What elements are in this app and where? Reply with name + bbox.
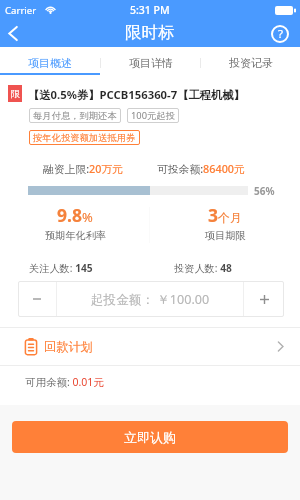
- button[interactable]: 投资记录: [201, 51, 300, 75]
- staticText: 融资上限:20万元: [43, 161, 124, 176]
- staticText: 可用余额: 0.01元: [25, 375, 104, 389]
- button[interactable]: Help: [264, 20, 296, 47]
- staticText: 每月付息，到期还本: [33, 110, 117, 122]
- button[interactable]: Increase amount: [244, 281, 284, 317]
- staticText: 预期年化利率: [45, 229, 107, 242]
- staticText: 可投余额:86400元: [157, 161, 245, 176]
- staticText: 3个月: [208, 203, 243, 227]
- staticText: 立即认购: [124, 429, 176, 445]
- staticText: 起投金额： ￥100.00: [91, 291, 210, 308]
- staticText: ?: [278, 26, 283, 42]
- staticText: 9.8%: [57, 203, 93, 227]
- staticText: 回款计划: [44, 339, 93, 354]
- staticText: 项目期限: [205, 229, 246, 242]
- staticText: 100元起投: [131, 109, 175, 122]
- staticText: 按年化投资额加送抵用券: [33, 132, 136, 144]
- staticText: 限: [11, 88, 20, 99]
- staticText: 限时标: [125, 22, 175, 43]
- staticText: 项目详情: [129, 56, 173, 70]
- staticText: 关注人数: 145: [29, 261, 93, 275]
- button[interactable]: 项目详情: [101, 51, 200, 75]
- staticText: 投资人数: 48: [174, 261, 232, 275]
- staticText: 投资记录: [229, 56, 273, 70]
- staticText: 【送0.5%券】PCCB156360-7【工程机械】: [28, 87, 245, 102]
- button[interactable]: Decrease amount: [18, 281, 56, 317]
- staticText: Carrier: [5, 4, 37, 17]
- button[interactable]: 项目概述: [0, 51, 100, 75]
- staticText: 项目概述: [28, 56, 72, 70]
- button[interactable]: Back: [0, 20, 26, 47]
- staticText: 56%: [254, 184, 275, 198]
- staticText: 5:31 PM: [130, 3, 170, 17]
- button[interactable]: 立即认购: [12, 421, 288, 453]
- button[interactable]: 回款计划: [0, 328, 300, 365]
